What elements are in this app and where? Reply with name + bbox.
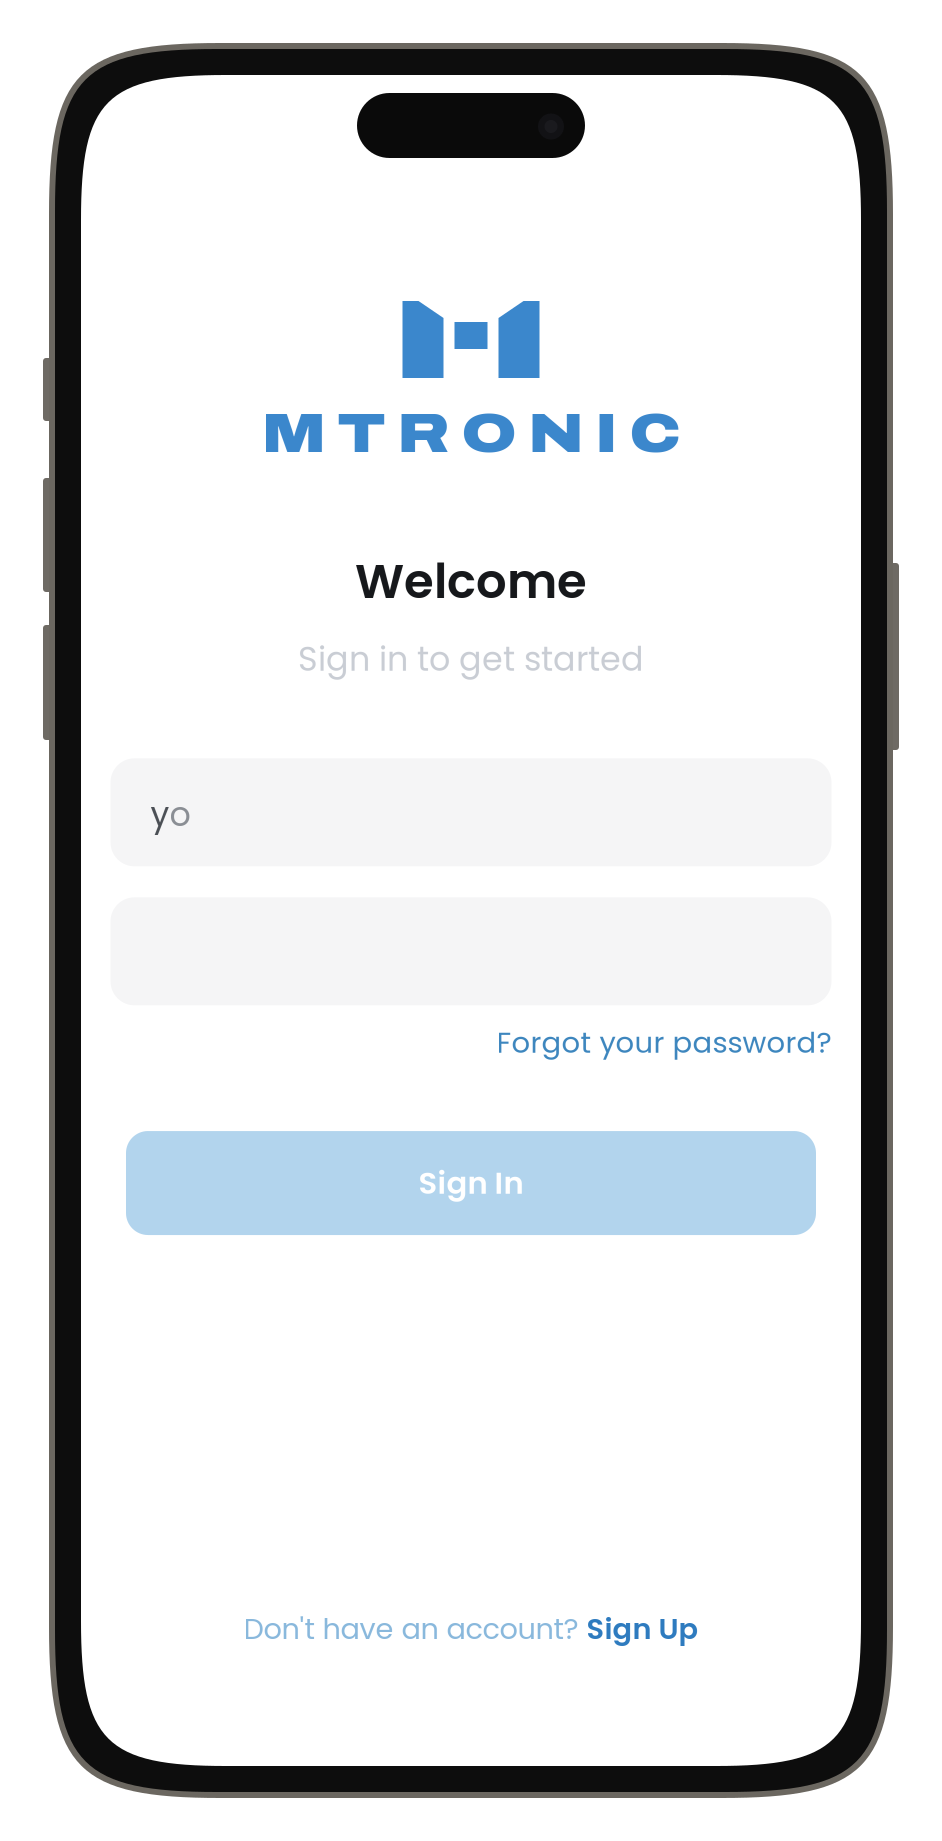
staticText: Don't have an account? (243, 1609, 586, 1649)
staticText: Forgot your password? (496, 1022, 831, 1063)
button[interactable]: Forgot your password? (496, 1010, 831, 1075)
staticText: Welcome (355, 547, 587, 615)
staticText: Sign In (418, 1162, 523, 1204)
staticText: y (150, 791, 169, 838)
staticText: MTRONIC (261, 404, 680, 463)
staticText: Sign in to get started (298, 636, 644, 682)
button[interactable]: Sign In (126, 1131, 816, 1235)
staticText: Sign Up (586, 1609, 698, 1649)
staticText: o (169, 791, 190, 838)
button[interactable]: Don't have an account? (243, 1597, 698, 1661)
